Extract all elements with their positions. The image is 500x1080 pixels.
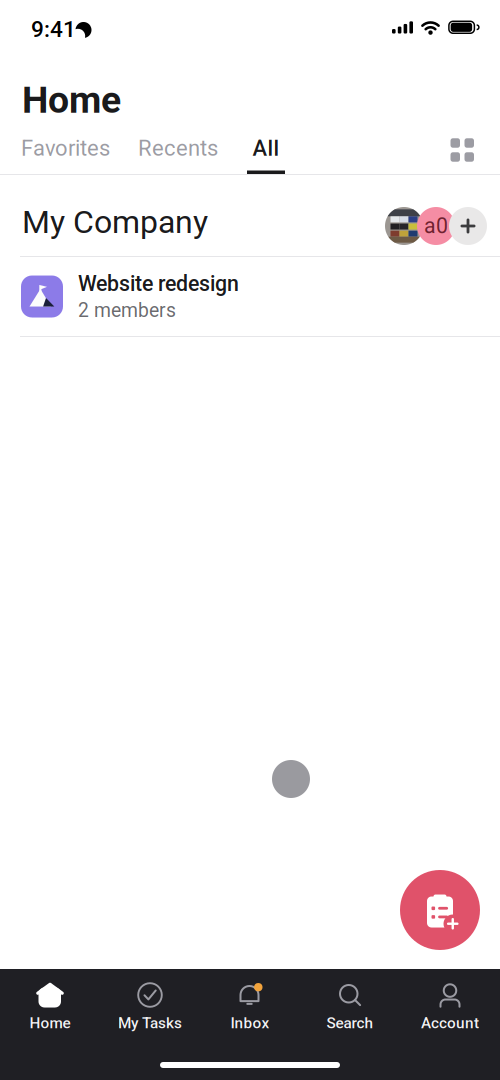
button[interactable]: Add member <box>449 207 487 245</box>
staticText: Search <box>326 1014 373 1032</box>
staticText: a0 <box>424 213 448 238</box>
button[interactable]: My Tasks <box>100 969 200 1031</box>
staticText: My Company <box>22 203 208 241</box>
staticText: Website redesign <box>78 271 239 296</box>
button[interactable]: Home <box>0 969 100 1031</box>
staticText: All <box>252 135 279 161</box>
staticText: Recents <box>138 135 218 161</box>
button[interactable]: Inbox <box>200 969 300 1031</box>
staticText: Account <box>421 1014 479 1032</box>
button[interactable]: Recents <box>124 126 234 174</box>
button[interactable]: Grid layout <box>434 126 490 174</box>
button[interactable]: All <box>234 126 301 174</box>
button[interactable]: Website redesign <box>0 257 500 336</box>
staticText: 9:41 <box>31 16 76 43</box>
button[interactable]: Favorites <box>0 126 124 174</box>
button[interactable]: Search <box>300 969 400 1031</box>
staticText: Inbox <box>230 1014 269 1032</box>
staticText: Favorites <box>21 135 110 161</box>
button[interactable]: New task <box>400 870 480 950</box>
staticText: Home <box>22 78 121 122</box>
staticText: 2 members <box>78 299 176 322</box>
button[interactable]: Account <box>400 969 500 1031</box>
staticText: My Tasks <box>118 1014 182 1032</box>
staticText: Home <box>29 1014 70 1032</box>
